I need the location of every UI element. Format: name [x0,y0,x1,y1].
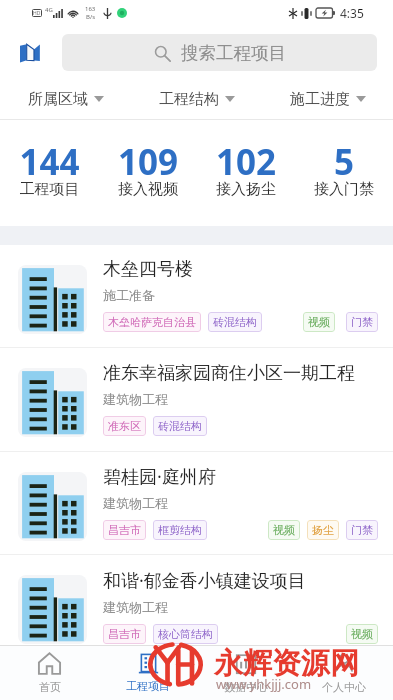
staticText: 个人中心 [322,680,366,694]
staticText: 永辉资源网 [214,645,359,682]
staticText: 4G [45,6,53,14]
staticText: 施工进度 [290,90,350,109]
staticText: 4:35 [340,5,364,21]
button[interactable]: 数据中心 [197,646,295,700]
button[interactable]: 109 [99,120,197,226]
staticText: 和谐·郁金香小镇建设项目 [103,568,306,593]
staticText: 视频 [351,627,373,641]
staticText: 核心筒结构 [158,627,213,641]
staticText: 首页 [39,680,61,694]
button[interactable]: 5 [295,120,393,226]
button[interactable]: 碧桂园·庭州府 [0,452,393,554]
button[interactable]: 个人中心 [295,646,393,700]
staticText: 接入扬尘 [197,180,295,199]
staticText: 工程项目 [126,679,170,693]
staticText: 扬尘 [312,523,334,537]
staticText: 视频 [308,315,330,329]
staticText: 工程结构 [159,90,219,109]
button[interactable]: 102 [197,120,295,226]
staticText: 准东区 [108,419,141,433]
staticText: 框剪结构 [158,523,202,537]
staticText: 施工准备 [103,287,155,303]
button[interactable]: 144 [0,120,99,226]
button[interactable]: 施工进度 [262,78,393,120]
staticText: 工程项目 [0,180,99,199]
staticText: 163 [85,5,96,13]
button[interactable]: 搜索工程项目 [62,34,377,71]
staticText: 搜索工程项目 [181,42,286,64]
button[interactable]: 准东幸福家园商住小区一期工程 [0,348,393,451]
staticText: 昌吉市 [108,523,141,537]
staticText: 砖混结构 [213,315,257,329]
staticText: 准东幸福家园商住小区一期工程 [103,362,355,385]
staticText: 木垒哈萨克自治县 [108,315,196,329]
staticText: 接入门禁 [295,180,393,199]
staticText: 建筑物工程 [103,495,168,511]
button[interactable]: 所属区域 [0,78,131,120]
staticText: 门禁 [351,523,373,537]
staticText: 144 [0,138,99,186]
button[interactable]: 工程项目 [99,646,197,700]
staticText: 102 [197,138,295,186]
staticText: 门禁 [351,315,373,329]
staticText: 109 [99,138,197,186]
staticText: 数据中心 [224,680,268,694]
staticText: 碧桂园·庭州府 [103,464,216,489]
button[interactable]: 首页 [0,646,99,700]
button[interactable]: Map [17,40,43,66]
staticText: 5 [295,138,393,186]
staticText: 木垒四号楼 [103,258,193,281]
staticText: 砖混结构 [158,419,202,433]
staticText: 建筑物工程 [103,599,168,615]
staticText: 接入视频 [99,180,197,199]
staticText: 视频 [273,523,295,537]
staticText: 所属区域 [28,90,88,109]
button[interactable]: 和谐·郁金香小镇建设项目 [0,555,393,658]
button[interactable]: 木垒四号楼 [0,245,393,347]
button[interactable]: 工程结构 [131,78,262,120]
staticText: www.yhkjjj.com [216,675,312,693]
staticText: B/s [86,13,96,21]
staticText: HD [33,10,41,17]
staticText: 建筑物工程 [103,391,168,407]
staticText: 昌吉市 [108,627,141,641]
